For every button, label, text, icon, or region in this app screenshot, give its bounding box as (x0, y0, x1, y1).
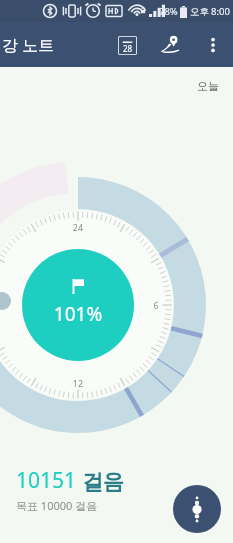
staticText: 8:00 (211, 5, 230, 18)
button[interactable]: Menu (173, 485, 221, 533)
staticText: 6 (144, 299, 168, 311)
staticText: 강 노트 (2, 34, 55, 56)
staticText: 목표 10000 걸음 (16, 498, 98, 513)
button[interactable]: More options (193, 25, 233, 65)
staticText: 12 (66, 377, 90, 389)
staticText: 24 (66, 221, 90, 233)
staticText: 10151 (16, 466, 77, 495)
button[interactable]: Calendar (105, 23, 149, 67)
button[interactable]: 오늘 (197, 79, 219, 93)
staticText: 101% (38, 301, 118, 327)
button[interactable]: Map (149, 23, 193, 67)
staticText: 78% (159, 5, 178, 18)
staticText: 오후 (190, 6, 209, 18)
staticText: 28 (123, 43, 133, 54)
staticText: 걸음 (82, 469, 124, 495)
